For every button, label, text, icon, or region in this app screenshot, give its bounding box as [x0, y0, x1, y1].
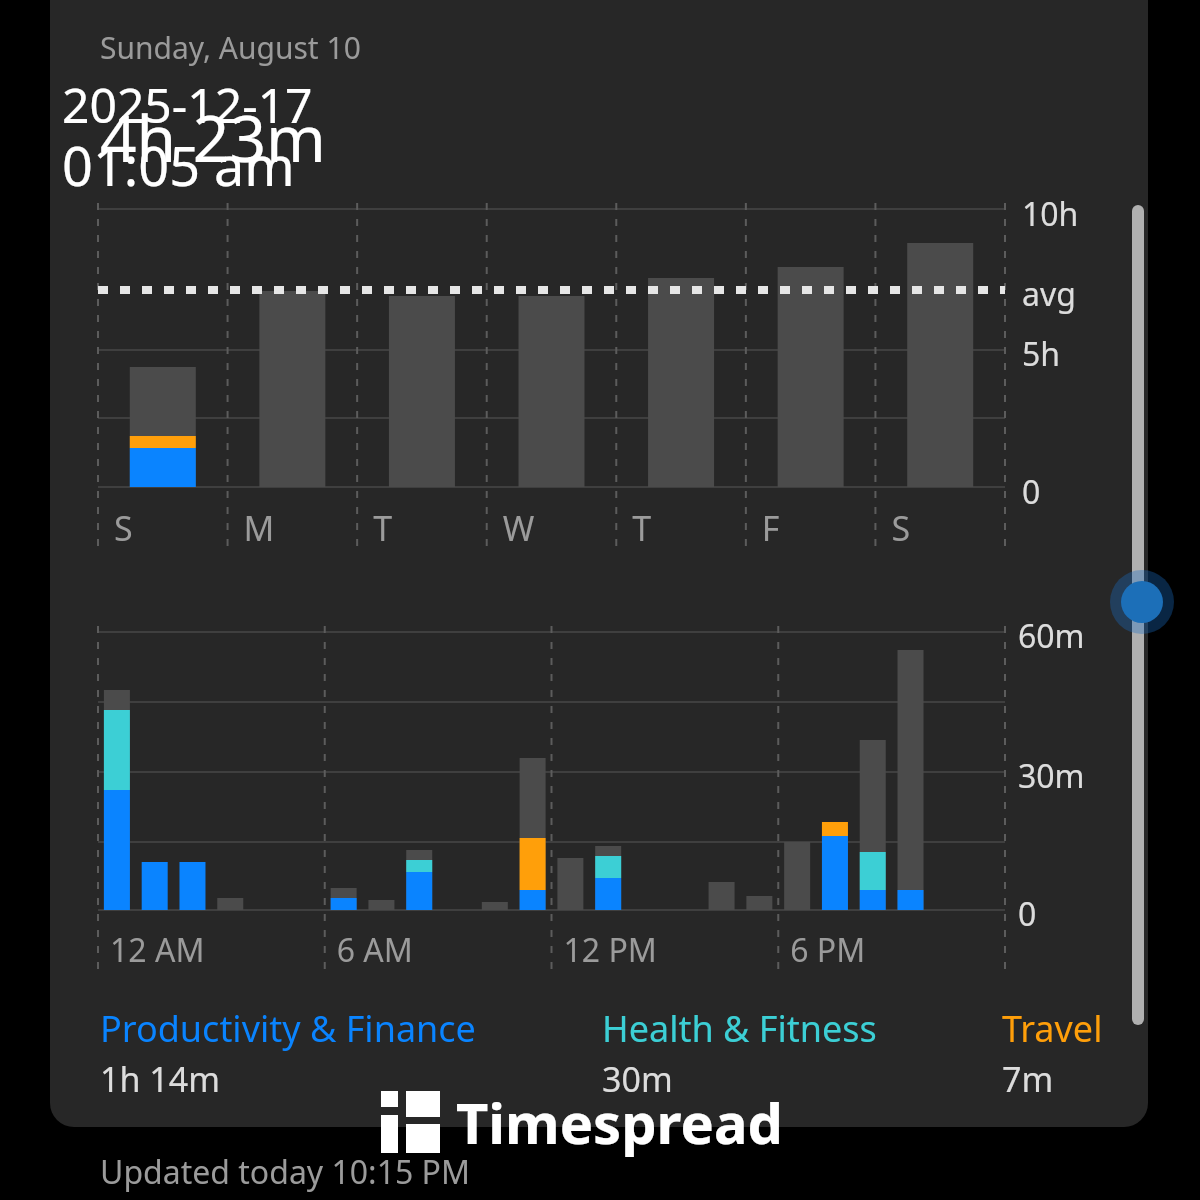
- button[interactable]: Daily screen time summary card: [0, 0, 1200, 1200]
